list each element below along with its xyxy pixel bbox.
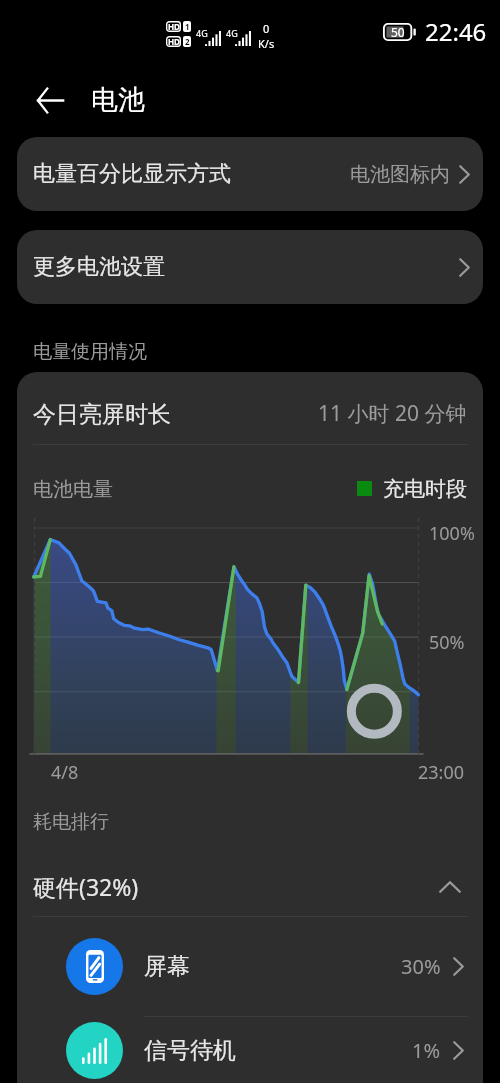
staticText: HD [168, 36, 180, 47]
staticText: 今日亮屏时长 [33, 400, 171, 429]
staticText: 4/8 [51, 760, 79, 785]
staticText: 电池 [91, 83, 145, 117]
staticText: 4G [226, 27, 238, 39]
button[interactable]: 屏幕 [66, 917, 464, 1016]
staticText: 11 小时 20 分钟 [318, 399, 467, 428]
staticText: 更多电池设置 [33, 253, 165, 281]
staticText: 电池图标内 [350, 162, 450, 187]
button[interactable]: 电量百分比显示方式 [17, 137, 483, 211]
staticText: 耗电排行 [33, 810, 109, 834]
staticText: 50% [429, 630, 465, 655]
staticText: 23:00 [418, 760, 465, 785]
staticText: 电池电量 [33, 477, 113, 502]
staticText: 1% [412, 1037, 441, 1064]
button[interactable]: 更多电池设置 [17, 230, 483, 304]
staticText: 电量百分比显示方式 [33, 160, 231, 188]
staticText: 充电时段 [383, 476, 467, 502]
staticText: 100% [429, 521, 475, 546]
staticText: 0 [263, 21, 270, 36]
staticText: 电量使用情况 [33, 340, 147, 364]
staticText: 1 [185, 21, 190, 32]
staticText: 2 [185, 36, 190, 47]
other: Collapse [439, 881, 461, 893]
staticText: 屏幕 [144, 952, 190, 981]
button[interactable]: Back [23, 73, 77, 127]
staticText: 硬件(32%) [33, 871, 139, 902]
button[interactable]: 信号待机 [66, 1017, 464, 1083]
button[interactable]: 硬件(32%) [33, 857, 461, 916]
staticText: K/s [258, 36, 275, 51]
staticText: 22:46 [425, 15, 487, 48]
staticText: 30% [401, 953, 441, 980]
staticText: HD [168, 21, 180, 32]
staticText: 4G [196, 27, 208, 39]
staticText: 50 [391, 24, 405, 40]
staticText: 信号待机 [144, 1036, 236, 1065]
